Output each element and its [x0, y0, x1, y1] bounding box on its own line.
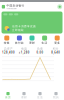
- staticText: 理财: [21, 96, 27, 99]
- button[interactable]: 转账: [0, 35, 13, 45]
- button[interactable]: 首页: [0, 92, 16, 99]
- button[interactable]: 生活: [38, 35, 51, 45]
- staticText: 负债: [37, 47, 43, 50]
- button[interactable]: 理财: [26, 35, 38, 45]
- staticText: 总资产: [4, 47, 13, 50]
- staticText: 立即领取: [12, 28, 24, 32]
- staticText: 积分: [53, 47, 59, 50]
- staticText: 收益: [21, 47, 27, 50]
- staticText: 信用卡消费享优惠: [12, 25, 36, 28]
- staticText: 理财: [29, 41, 35, 45]
- staticText: 0.00: [36, 51, 43, 54]
- staticText: 生活: [42, 41, 48, 45]
- staticText: 中国农业银行: [6, 4, 24, 7]
- staticText: 首页: [5, 96, 11, 99]
- staticText: 掌上银行 · 智慧生活服务: [6, 8, 16, 9]
- staticText: 我的: [53, 96, 59, 99]
- staticText: 转账: [4, 41, 10, 45]
- staticText: 8,640: [51, 51, 60, 54]
- button[interactable]: 理财: [16, 92, 32, 99]
- button[interactable]: 生活: [32, 92, 48, 99]
- staticText: 生活: [37, 96, 43, 99]
- button[interactable]: 我的: [48, 92, 64, 99]
- button[interactable]: Customer service: [57, 4, 62, 9]
- staticText: +1,280: [19, 51, 30, 54]
- staticText: 收付款: [15, 41, 24, 45]
- button[interactable]: 收付款: [13, 35, 26, 45]
- button[interactable]: 更多: [51, 35, 63, 45]
- staticText: 更多: [54, 41, 60, 45]
- staticText: 128,400: [2, 51, 15, 54]
